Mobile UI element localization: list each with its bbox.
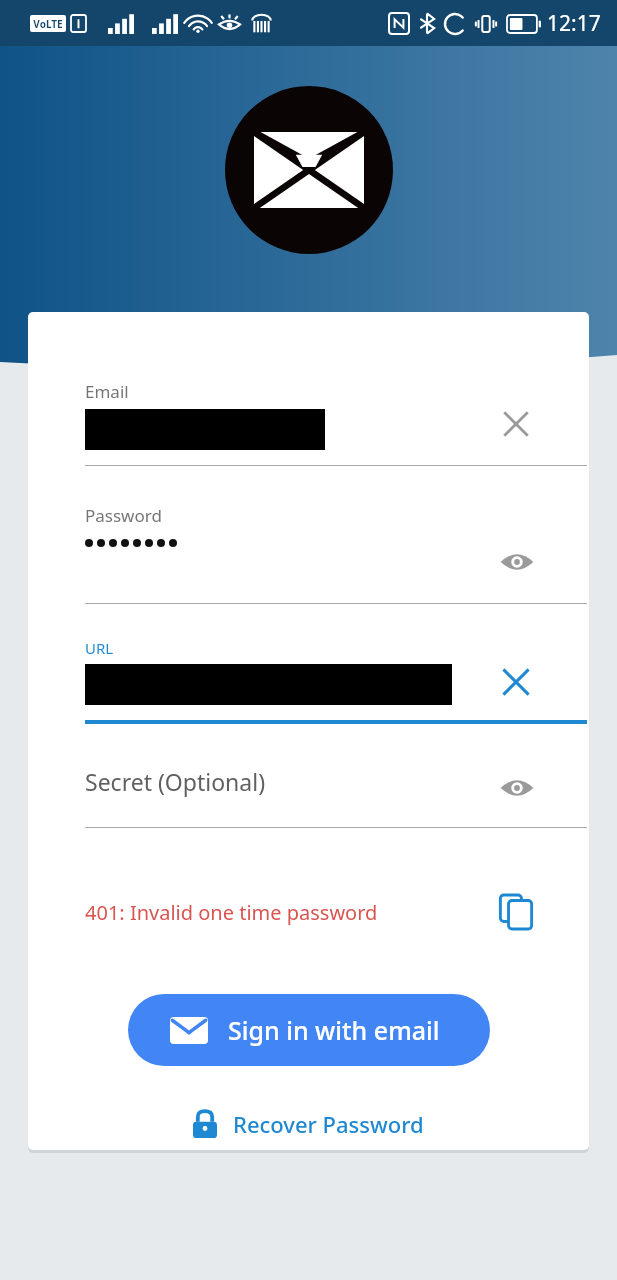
- staticText: Sign in with email: [228, 1013, 440, 1047]
- staticText: Recover Password: [233, 1109, 424, 1139]
- button[interactable]: Recover Password: [177, 1099, 440, 1149]
- button[interactable]: Clear Email: [489, 397, 543, 451]
- button[interactable]: Copy error: [489, 885, 543, 939]
- staticText: URL: [85, 638, 114, 658]
- button[interactable]: Clear URL: [489, 655, 543, 709]
- staticText: Secret (Optional): [85, 766, 266, 797]
- staticText: VoLTE: [33, 17, 63, 31]
- button[interactable]: Show password: [491, 536, 543, 588]
- staticText: Password: [85, 504, 162, 527]
- staticText: 401: Invalid one time password: [85, 899, 378, 926]
- staticText: Email: [85, 380, 129, 403]
- staticText: 12:17: [547, 9, 601, 38]
- button[interactable]: Show secret: [491, 762, 543, 814]
- button[interactable]: Sign in with email: [128, 994, 490, 1066]
